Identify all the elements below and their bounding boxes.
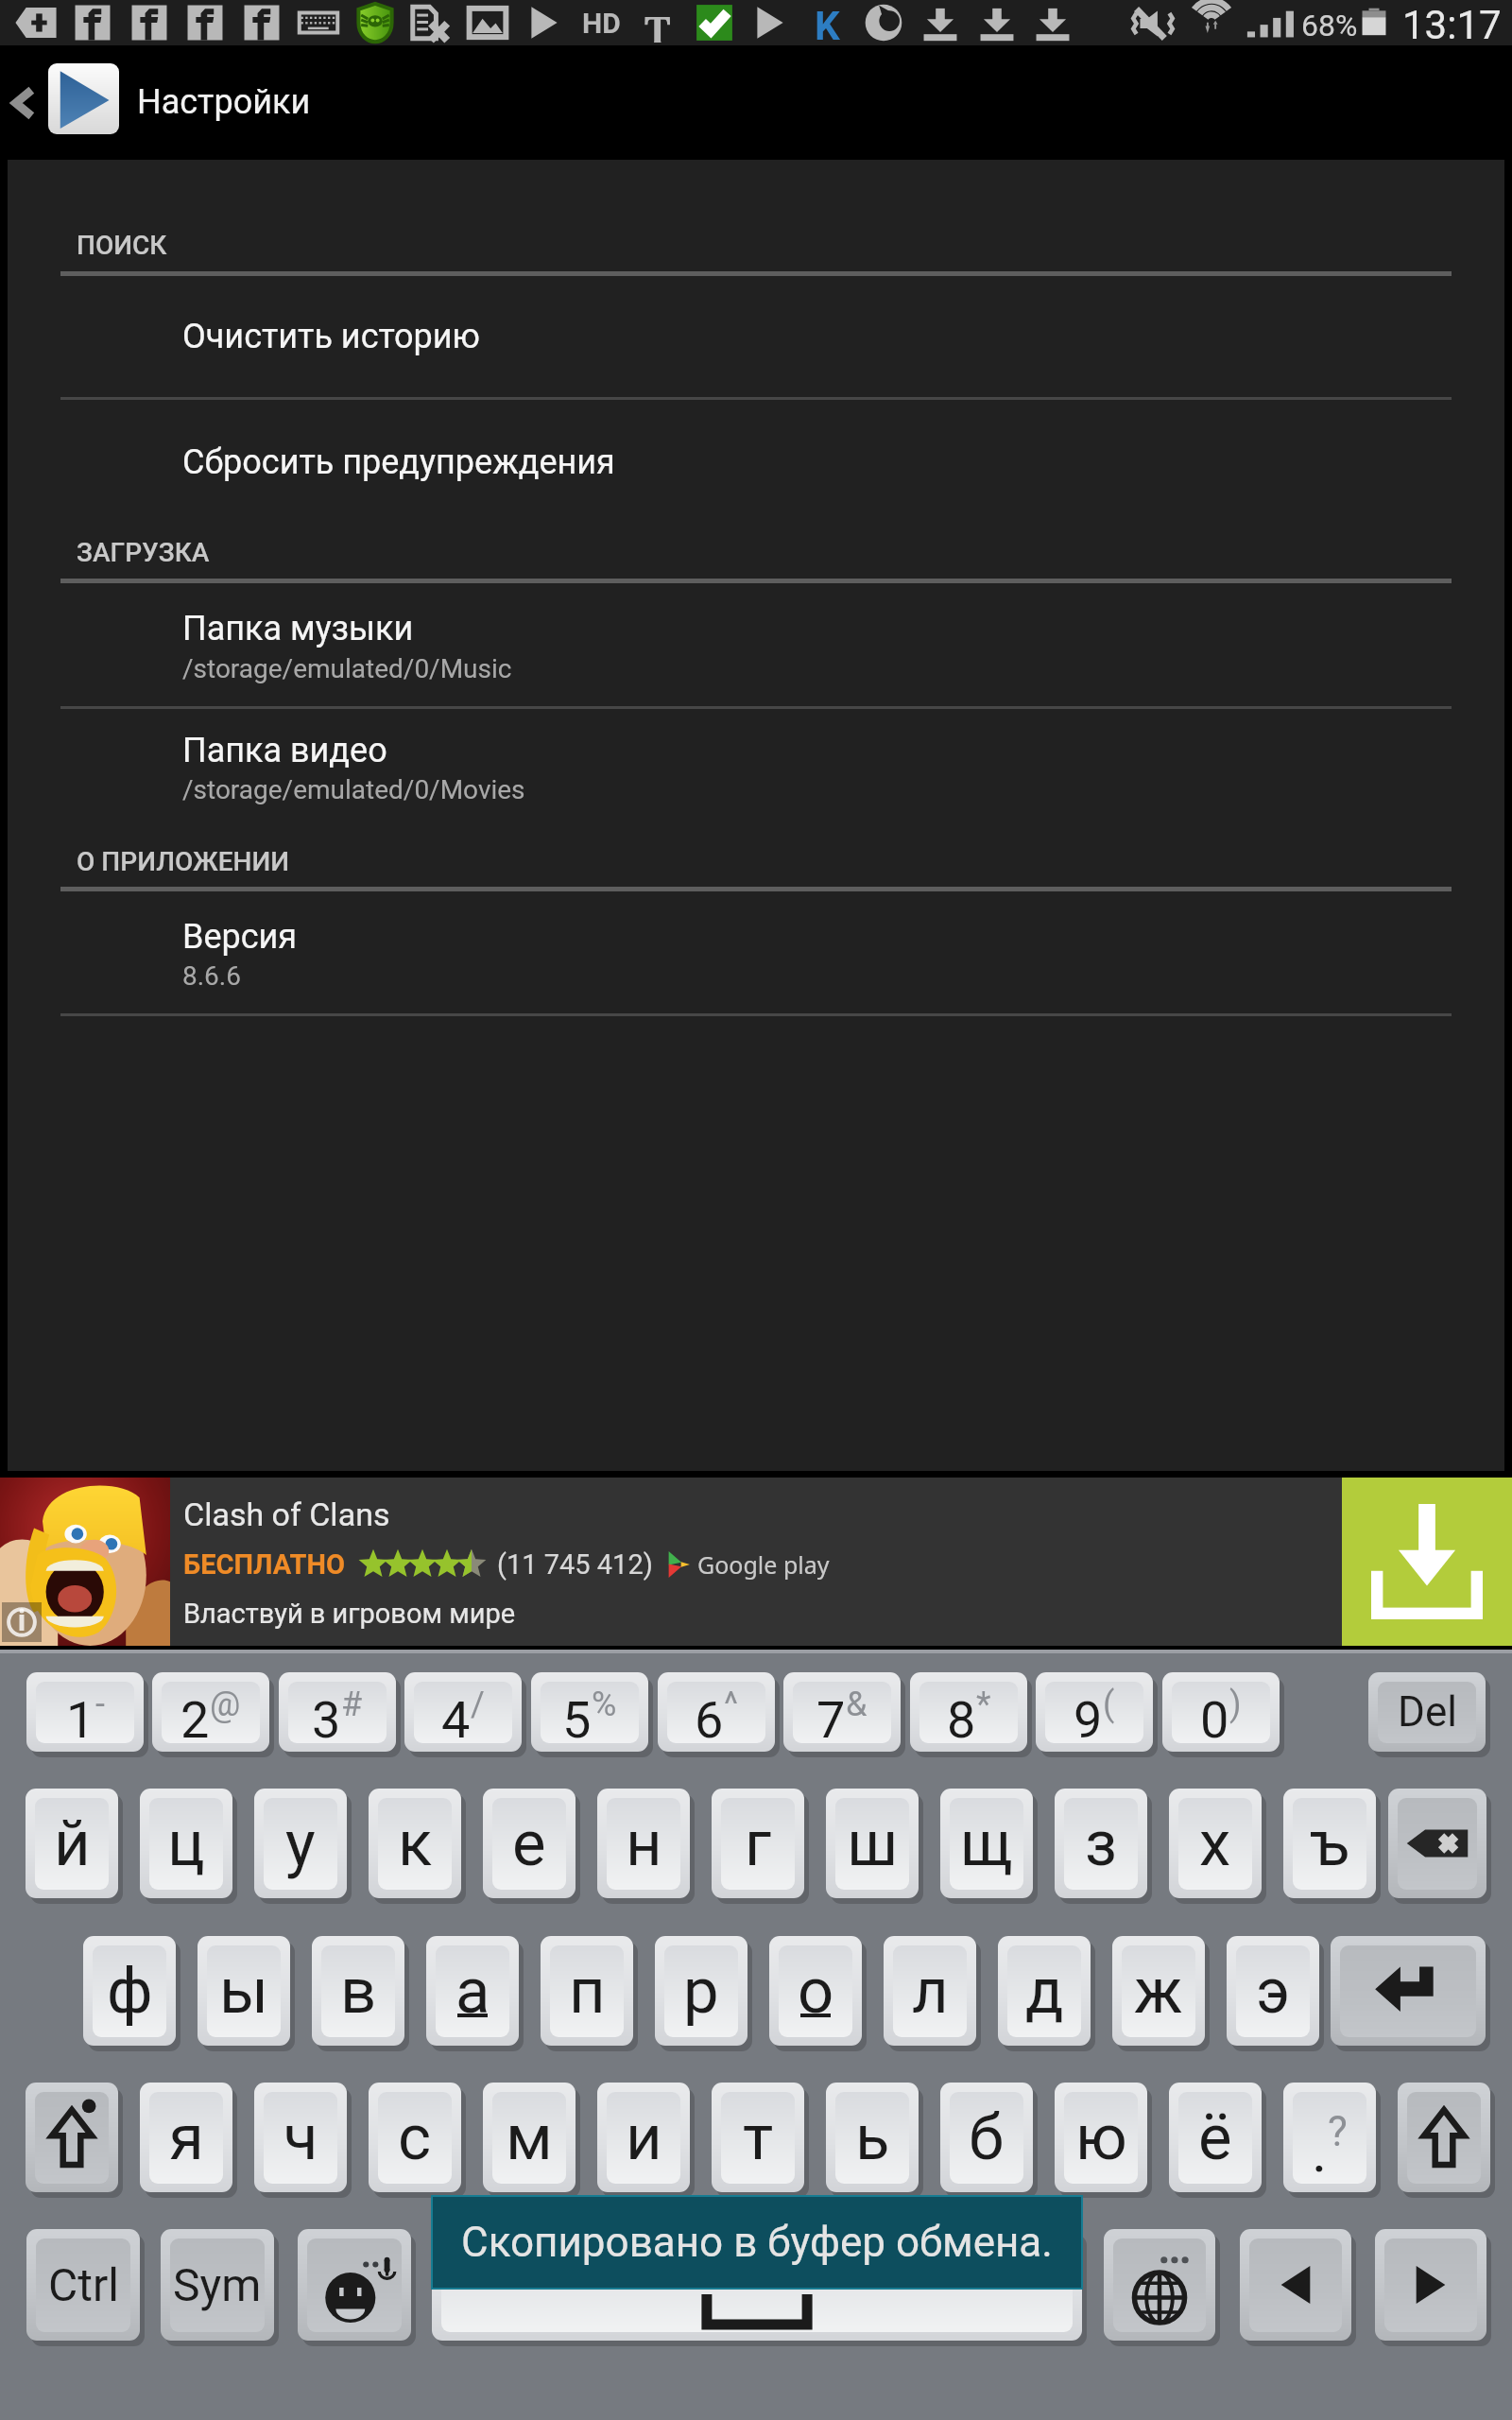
staticText: 8.6.6 [182,960,241,992]
button[interactable]: 7 [783,1672,901,1752]
button[interactable]: Папка видео [60,709,1452,846]
button[interactable]: App icon [48,63,119,134]
staticText: Настройки [137,82,311,122]
button[interactable]: 5 [531,1672,648,1752]
staticText: р [683,1954,719,2029]
staticText: ц [167,1806,205,1881]
button[interactable]: ь [826,2083,919,2192]
other: Enter [1331,1936,1492,2053]
button[interactable]: с [369,2083,461,2192]
button[interactable]: Папка музыки [60,583,1452,706]
button[interactable]: 4 [404,1672,522,1752]
button[interactable] [1240,2229,1351,2341]
other: Space [432,2229,1089,2348]
button[interactable]: Русский [432,2229,1082,2341]
staticText: м [506,2100,553,2175]
button[interactable] [1398,2083,1490,2192]
staticText: х [1199,1806,1231,1881]
button[interactable]: Clash of Clans [0,1478,1512,1646]
button[interactable]: з [1055,1789,1147,1898]
button[interactable] [1388,1789,1486,1898]
button[interactable]: 0 [1162,1672,1280,1752]
staticText: . [1312,2117,1328,2186]
staticText: / [471,1685,485,1724]
staticText: (11 745 412) [497,1548,653,1581]
staticText: г [745,1806,772,1881]
staticText: к [398,1806,433,1881]
button[interactable]: ы [198,1936,290,2046]
button[interactable]: Сбросить предупреждения [60,400,1452,537]
other: Shift [1398,2083,1497,2200]
button[interactable]: Back [0,45,45,160]
button[interactable]: й [26,1789,118,1898]
button[interactable]: д [998,1936,1091,2046]
button[interactable]: у [254,1789,347,1898]
button[interactable]: в [312,1936,404,2046]
staticText: э [1256,1954,1291,2029]
button[interactable] [1104,2229,1215,2341]
button[interactable]: ф [83,1936,176,2046]
other: Cursor left [1240,2229,1358,2348]
staticText: О ПРИЛОЖЕНИИ [77,846,290,877]
button[interactable]: к [369,1789,461,1898]
button[interactable]: 3 [279,1672,396,1752]
staticText: Папка музыки [182,609,414,648]
button[interactable] [1375,2229,1486,2341]
staticText: 1 [66,1690,95,1750]
other: Caps lock [26,2083,125,2200]
button[interactable]: п [541,1936,633,2046]
button[interactable]: Очистить историю [60,276,1452,397]
button[interactable] [1331,1936,1486,2046]
button[interactable] [26,2083,118,2192]
button[interactable]: л [884,1936,976,2046]
staticText: в [340,1954,377,2029]
button[interactable]: Версия [60,891,1452,1013]
button[interactable]: ж [1112,1936,1205,2046]
button[interactable]: ч [254,2083,347,2192]
button[interactable]: б [940,2083,1033,2192]
button[interactable]: о [769,1936,862,2046]
button[interactable]: . [1283,2083,1376,2192]
button[interactable] [298,2229,411,2341]
button[interactable]: 8 [910,1672,1027,1752]
button[interactable]: ъ [1283,1789,1376,1898]
button[interactable]: е [483,1789,576,1898]
staticText: 2 [180,1690,210,1750]
button[interactable]: 1 [26,1672,144,1752]
button[interactable]: р [655,1936,747,2046]
button[interactable]: я [140,2083,232,2192]
staticText: Сбросить предупреждения [182,442,615,482]
button[interactable]: м [483,2083,576,2192]
button[interactable]: 9 [1036,1672,1153,1752]
staticText: Версия [182,917,298,957]
button[interactable]: 2 [152,1672,269,1752]
button[interactable]: г [712,1789,804,1898]
staticText: й [54,1806,91,1881]
staticText: т [743,2100,774,2175]
button[interactable]: Del [1368,1672,1486,1752]
button[interactable]: и [597,2083,690,2192]
button[interactable]: ш [826,1789,919,1898]
button[interactable]: ю [1055,2083,1147,2192]
button[interactable]: э [1227,1936,1319,2046]
button[interactable]: т [712,2083,804,2192]
staticText: Del [1398,1687,1457,1737]
staticText: Русский [692,2240,823,2280]
staticText: % [592,1685,617,1724]
staticText: 4 [441,1690,471,1750]
staticText: ю [1075,2100,1127,2175]
button[interactable]: ё [1169,2083,1262,2192]
button[interactable]: н [597,1789,690,1898]
button[interactable]: а [426,1936,519,2046]
button[interactable]: Ctrl [26,2229,140,2341]
button[interactable]: Sym [161,2229,274,2341]
staticText: б [969,2100,1005,2175]
button[interactable]: Download [1342,1478,1512,1646]
button[interactable]: ц [140,1789,232,1898]
staticText: Папка видео [182,731,387,770]
staticText: HD [582,7,621,40]
button[interactable]: щ [940,1789,1033,1898]
button[interactable]: х [1169,1789,1262,1898]
staticText: Google play [697,1548,830,1581]
button[interactable]: 6 [658,1672,775,1752]
